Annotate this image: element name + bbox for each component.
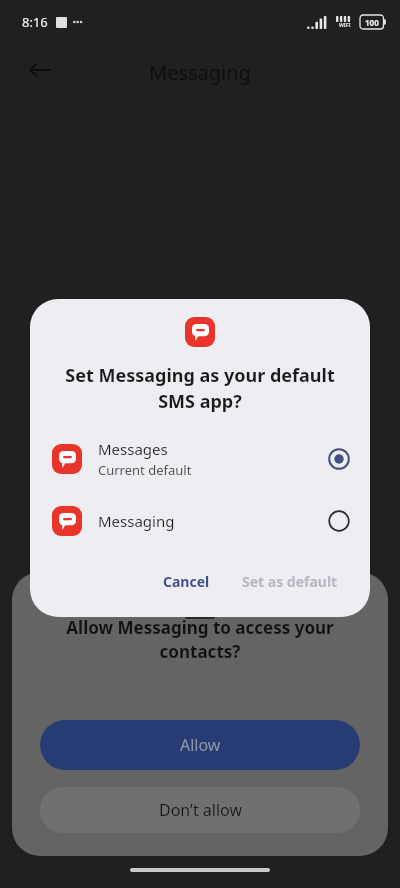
button[interactable]: Don’t allow — [40, 787, 360, 833]
staticText: Messages — [98, 439, 168, 459]
staticText: WIFI — [339, 22, 351, 29]
button[interactable]: Cancel — [151, 564, 222, 599]
staticText: Allow Messaging to access your contacts? — [38, 616, 362, 663]
staticText: Set as default — [242, 572, 338, 591]
staticText: Current default — [98, 461, 192, 479]
button[interactable]: Set as default — [232, 564, 348, 599]
staticText: Messaging — [149, 59, 251, 86]
staticText: 8:16 — [22, 13, 48, 31]
staticText: Messaging — [98, 511, 175, 531]
button[interactable]: Messages — [30, 436, 370, 482]
staticText: 100 — [365, 17, 379, 28]
staticText: Set Messaging as your default SMS app? — [52, 363, 348, 414]
staticText: Allow — [180, 734, 221, 756]
staticText: Don’t allow — [159, 799, 242, 821]
button[interactable]: Messaging — [30, 498, 370, 544]
button[interactable]: Allow — [40, 720, 360, 770]
staticText: Cancel — [163, 572, 210, 591]
